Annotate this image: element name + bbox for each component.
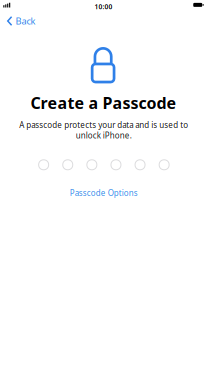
button[interactable]: Back — [0, 11, 42, 31]
staticText: Passcode Options — [70, 188, 138, 198]
staticText: A passcode protects your data and is use… — [19, 120, 188, 141]
staticText: Back — [16, 15, 36, 27]
staticText: Create a Passcode — [30, 92, 176, 113]
staticText: 10:00 — [94, 2, 112, 11]
button[interactable]: Passcode Options — [59, 187, 149, 199]
